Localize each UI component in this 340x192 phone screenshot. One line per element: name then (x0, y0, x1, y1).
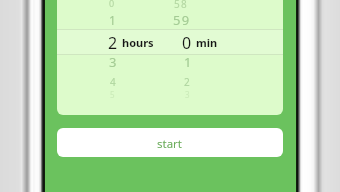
staticText: 5 (110, 89, 115, 100)
staticText: 59 (173, 11, 191, 29)
staticText: 4 (110, 75, 116, 89)
staticText: 3 (185, 89, 190, 100)
staticText: start (157, 136, 183, 152)
button[interactable]: Minutes, 0 (170, 0, 273, 115)
staticText: min (196, 35, 218, 50)
staticText: 2 (184, 75, 190, 89)
staticText: hours (122, 35, 154, 50)
staticText: 1 (109, 12, 116, 28)
staticText: 0 (109, 0, 115, 9)
staticText: 0 (182, 32, 192, 54)
staticText: 1 (184, 53, 192, 71)
button[interactable]: Hours, 2 (67, 0, 170, 115)
staticText: 3 (109, 53, 117, 71)
staticText: 58 (174, 0, 188, 11)
button[interactable]: start (57, 128, 283, 157)
staticText: 2 (108, 32, 118, 54)
